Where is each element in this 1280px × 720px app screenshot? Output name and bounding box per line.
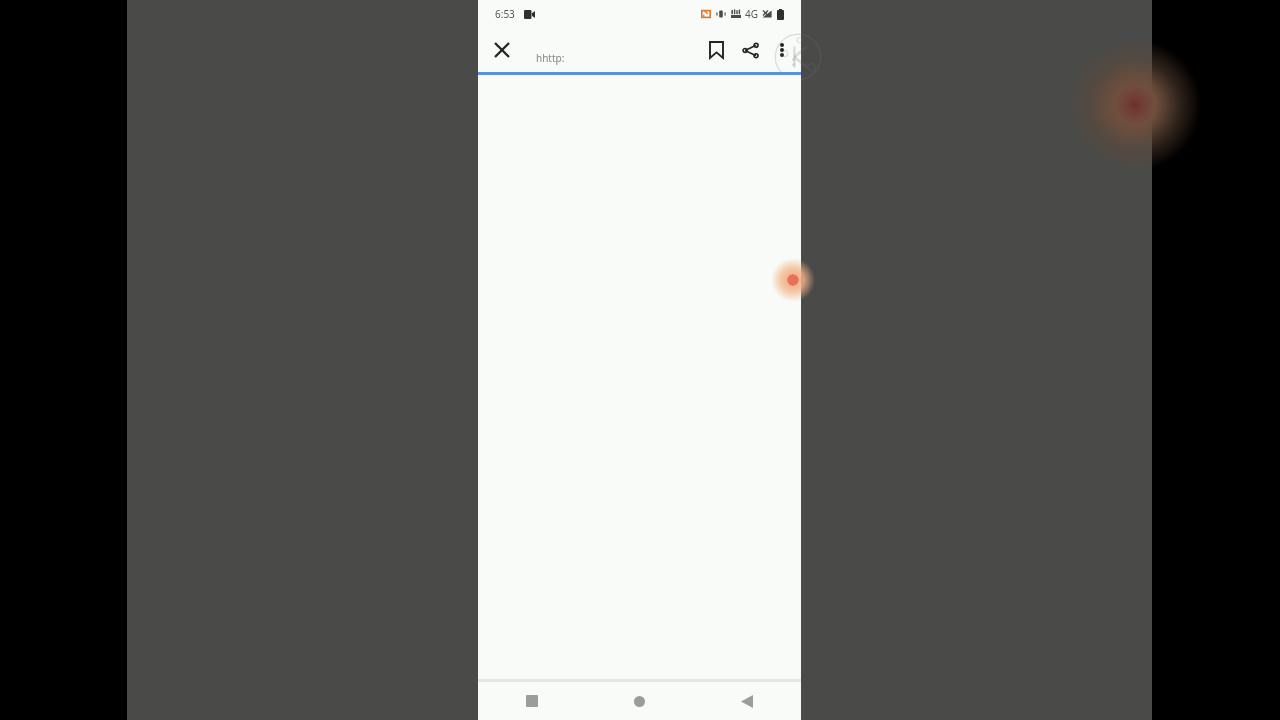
- button[interactable]: Recent apps: [478, 682, 585, 720]
- button[interactable]: Share: [733, 33, 767, 67]
- button[interactable]: Home: [585, 682, 693, 720]
- button[interactable]: Bookmark: [699, 33, 733, 67]
- button[interactable]: Close: [486, 34, 518, 66]
- staticText: 6:53: [495, 7, 515, 21]
- staticText: 4G: [745, 7, 758, 21]
- button[interactable]: More options: [767, 35, 797, 65]
- button[interactable]: Back: [693, 682, 801, 720]
- button[interactable]: hhttp:: [536, 51, 565, 65]
